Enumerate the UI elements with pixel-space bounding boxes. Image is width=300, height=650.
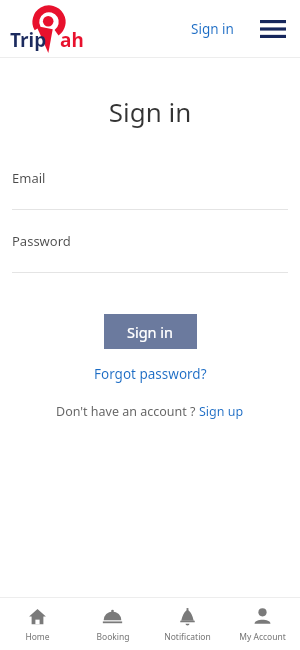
staticText: Forgot password? [94,365,207,383]
staticText: ah [60,27,84,51]
button[interactable]: Notification [150,602,225,647]
button[interactable]: My Account [225,602,300,647]
staticText: Sign in [127,322,174,342]
button[interactable]: Home [0,602,75,647]
staticText: Trip [10,27,47,51]
button[interactable]: Sign in [104,314,197,349]
staticText: Home [25,631,50,643]
staticText: Don't have an account ? [56,403,199,420]
staticText: Notification [164,631,211,643]
button[interactable]: Sign in [183,14,242,44]
staticText: Sign in [0,94,300,129]
staticText: Email [12,169,46,187]
staticText: Sign in [191,20,234,38]
staticText: Password [12,232,71,250]
button[interactable]: Forgot password? [88,363,213,385]
button[interactable]: Booking [75,602,150,647]
staticText: Booking [96,631,130,643]
button[interactable]: Email [0,169,300,210]
button[interactable]: Sign up [199,403,244,420]
staticText: My Account [239,631,286,643]
staticText: Sign up [199,403,244,420]
button[interactable]: Password [0,232,300,273]
button[interactable]: Open navigation menu [256,12,290,46]
